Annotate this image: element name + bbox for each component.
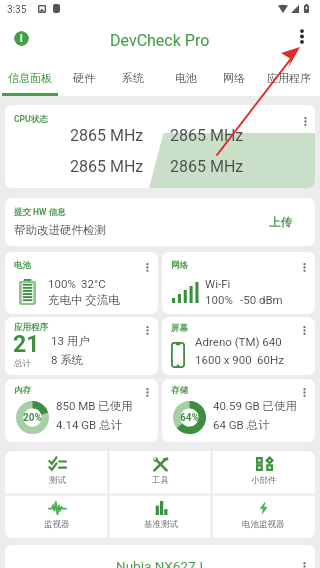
button[interactable]: 信息面板 (0, 62, 60, 93)
staticText: DevCheck Pro (110, 31, 210, 50)
button[interactable]: More (297, 112, 313, 130)
button[interactable]: Nubia NX627J (5, 545, 315, 568)
button[interactable]: More (296, 321, 312, 339)
staticText: 3:35 (7, 4, 27, 16)
staticText: 2865 MHz (170, 157, 244, 176)
button[interactable]: 硬件 (65, 62, 103, 93)
button[interactable]: 工具 (109, 451, 212, 494)
staticText: 总计 (14, 358, 31, 369)
button[interactable]: 测试 (5, 451, 109, 494)
staticText: 1600 x 900 (195, 353, 252, 366)
staticText: Nubia NX627J (116, 558, 204, 568)
staticText: 32°C (81, 277, 106, 290)
staticText: 40.59 GB 已使用 (213, 399, 298, 413)
button[interactable]: 内存 (5, 379, 158, 442)
button[interactable]: More (296, 557, 312, 568)
staticText: 13 用户 (51, 334, 90, 348)
staticText: 测试 (49, 475, 66, 486)
staticText: 充电中 交流电 (48, 293, 120, 307)
staticText: 2865 MHz (70, 157, 144, 176)
staticText: 64% (180, 412, 199, 424)
staticText: 帮助改进硬件检测 (14, 223, 106, 237)
button[interactable]: 系统 (114, 62, 152, 93)
button[interactable]: 小部件 (212, 451, 315, 494)
button[interactable]: More (139, 321, 155, 339)
staticText: 20% (23, 412, 42, 424)
staticText: 8 系统 (51, 353, 84, 367)
staticText: 2865 MHz (170, 126, 244, 145)
staticText: i (20, 33, 23, 45)
button[interactable]: 电池 (167, 62, 205, 93)
staticText: 系统 (122, 71, 144, 85)
staticText: 网络 (171, 260, 188, 271)
button[interactable]: More (296, 258, 312, 276)
staticText: 监视器 (44, 519, 70, 530)
button[interactable]: 应用程序 (259, 62, 319, 93)
staticText: 内存 (14, 385, 31, 396)
button[interactable]: 网络 (215, 62, 253, 93)
button[interactable]: More options (288, 22, 316, 50)
staticText: 100% (48, 277, 76, 290)
staticText: Adreno (TM) 640 (195, 335, 282, 348)
staticText: 存储 (171, 385, 188, 396)
staticText: 电池 (14, 260, 31, 271)
staticText: 基准测试 (144, 519, 178, 530)
staticText: CPU状态 (14, 114, 48, 125)
button[interactable]: CPU状态 (5, 105, 315, 188)
button[interactable]: 应用程序 (5, 317, 158, 375)
button[interactable]: 电池 (5, 252, 158, 314)
staticText: Wi-Fi (205, 277, 231, 290)
staticText: 小部件 (251, 475, 277, 486)
button[interactable]: 网络 (162, 252, 315, 314)
staticText: 2865 MHz (70, 126, 144, 145)
button[interactable]: 存储 (162, 379, 315, 442)
staticText: 21 (13, 331, 40, 358)
staticText: -50 dBm (240, 293, 283, 306)
staticText: 应用程序 (14, 322, 48, 333)
button[interactable]: 监视器 (5, 494, 109, 538)
staticText: 信息面板 (8, 71, 52, 85)
button[interactable]: More (296, 383, 312, 401)
staticText: 4.14 GB 总计 (56, 418, 123, 432)
staticText: 100% (205, 293, 233, 306)
staticText: 60Hz (257, 353, 284, 366)
button[interactable]: App info (14, 31, 29, 46)
staticText: 64 GB 总计 (213, 418, 270, 432)
staticText: 屏幕 (171, 323, 188, 334)
staticText: 硬件 (73, 71, 95, 85)
staticText: 工具 (152, 475, 169, 486)
button[interactable]: 测试 (5, 451, 315, 538)
button[interactable]: 屏幕 (162, 317, 315, 375)
staticText: 上传 (269, 215, 292, 229)
button[interactable]: More (139, 258, 155, 276)
button[interactable]: 提交 HW 信息 (5, 198, 315, 246)
button[interactable]: More (139, 383, 155, 401)
button[interactable]: 上传 (257, 208, 303, 235)
staticText: 提交 HW 信息 (14, 207, 66, 218)
button[interactable]: 基准测试 (109, 494, 212, 538)
staticText: 850 MB 已使用 (56, 399, 133, 413)
staticText: 应用程序 (267, 71, 311, 85)
button[interactable]: 电池监视器 (212, 494, 315, 538)
staticText: 电池监视器 (242, 519, 285, 530)
staticText: 电池 (175, 71, 197, 85)
staticText: 网络 (223, 71, 245, 85)
